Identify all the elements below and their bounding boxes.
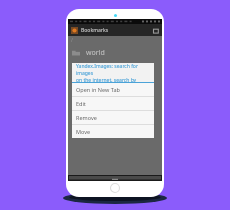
- staticText: Bookmarks: [81, 27, 109, 34]
- staticText: Yandex.Images: search for images on: [82, 65, 162, 72]
- button[interactable]: Add bookmark: [151, 26, 160, 35]
- button[interactable]: Edit: [72, 97, 154, 110]
- button[interactable]: Yandex.Images: search for images on: [68, 61, 162, 75]
- staticText: Open in New Tab: [76, 86, 120, 93]
- staticText: /: [71, 37, 73, 44]
- button[interactable]: Remove: [72, 111, 154, 124]
- staticText: world: [86, 48, 105, 58]
- button[interactable]: Move: [72, 125, 154, 138]
- button[interactable]: Open in New Tab: [72, 83, 154, 96]
- staticText: Yandex.Images: search for images on the …: [76, 63, 150, 82]
- staticText: Move: [76, 128, 91, 135]
- staticText: Edit: [76, 100, 86, 107]
- staticText: Remove: [76, 114, 97, 121]
- button[interactable]: world: [68, 44, 162, 61]
